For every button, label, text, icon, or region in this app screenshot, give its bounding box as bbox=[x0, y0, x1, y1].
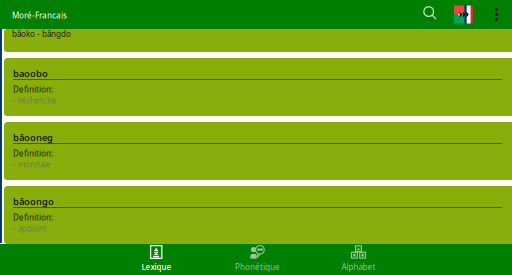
staticText: Alphabet bbox=[341, 262, 375, 272]
button[interactable]: Lexique bbox=[106, 244, 207, 275]
button[interactable]: Swap translation direction bbox=[444, 0, 483, 29]
staticText: Definition: bbox=[13, 84, 53, 95]
button[interactable]: Phonétique bbox=[207, 244, 308, 275]
staticText: - recherche bbox=[13, 95, 57, 106]
staticText: Lexique bbox=[141, 262, 171, 272]
staticText: - appoint bbox=[13, 223, 47, 234]
button[interactable]: bǎoongo bbox=[4, 186, 512, 244]
staticText: baoobo bbox=[13, 67, 48, 80]
staticText: Definition: bbox=[13, 212, 53, 223]
button[interactable]: bǎooneg bbox=[4, 122, 512, 180]
staticText: - monnaie bbox=[13, 159, 51, 170]
staticText: bǎoongo bbox=[13, 195, 54, 208]
staticText: Definition: bbox=[13, 148, 53, 159]
staticText: Moré-Francais bbox=[12, 10, 67, 21]
button[interactable]: Alphabet bbox=[308, 244, 409, 275]
staticText: Phonétique bbox=[235, 262, 280, 272]
staticText: bǎoko - bǎngdo bbox=[12, 29, 71, 39]
button[interactable]: Search bbox=[419, 0, 444, 29]
button[interactable]: More options bbox=[483, 0, 510, 29]
staticText: bǎooneg bbox=[13, 131, 53, 144]
button[interactable]: baoobo bbox=[4, 58, 512, 116]
button[interactable]: bǎoko - bǎngdo bbox=[4, 29, 512, 52]
